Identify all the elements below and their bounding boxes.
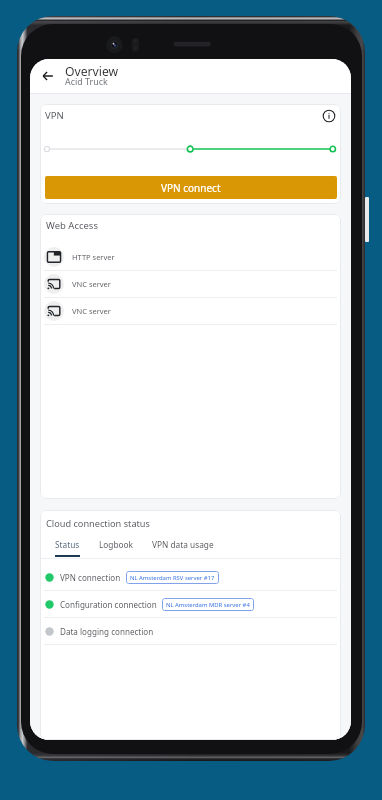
staticText: Configuration connection xyxy=(60,599,157,610)
button[interactable]: VNC server xyxy=(40,271,341,297)
staticText: NL Amsterdam MDR server #4 xyxy=(166,601,250,609)
button[interactable]: VNC server xyxy=(40,298,341,324)
button[interactable]: Configuration connection xyxy=(40,591,341,617)
staticText: VNC server xyxy=(72,279,111,289)
staticText: Data logging connection xyxy=(60,626,154,637)
staticText: Cloud connection status xyxy=(46,517,150,530)
staticText: Logbook xyxy=(99,539,134,550)
button[interactable]: VPN connection xyxy=(40,564,341,590)
staticText: VPN connect xyxy=(161,181,221,195)
button[interactable]: Data logging connection xyxy=(40,618,341,644)
button[interactable]: VPN connect xyxy=(45,176,337,199)
button[interactable]: HTTP server xyxy=(40,244,341,270)
button[interactable]: VPN data usage xyxy=(150,539,216,555)
button[interactable]: Status xyxy=(53,539,82,557)
staticText: Overview xyxy=(65,63,119,80)
staticText: Web Access xyxy=(46,219,98,232)
staticText: Acid Truck xyxy=(65,75,108,87)
staticText: VPN data usage xyxy=(152,539,214,550)
staticText: NL Amsterdam RSV server #17 xyxy=(130,574,215,582)
button[interactable]: Logbook xyxy=(97,539,136,555)
staticText: VNC server xyxy=(72,306,111,316)
staticText: VPN connection xyxy=(60,572,121,583)
button[interactable]: Back xyxy=(34,62,62,90)
staticText: VPN xyxy=(45,109,64,122)
staticText: Status xyxy=(55,539,80,550)
button[interactable]: Info xyxy=(321,108,337,124)
staticText: HTTP server xyxy=(72,252,115,262)
